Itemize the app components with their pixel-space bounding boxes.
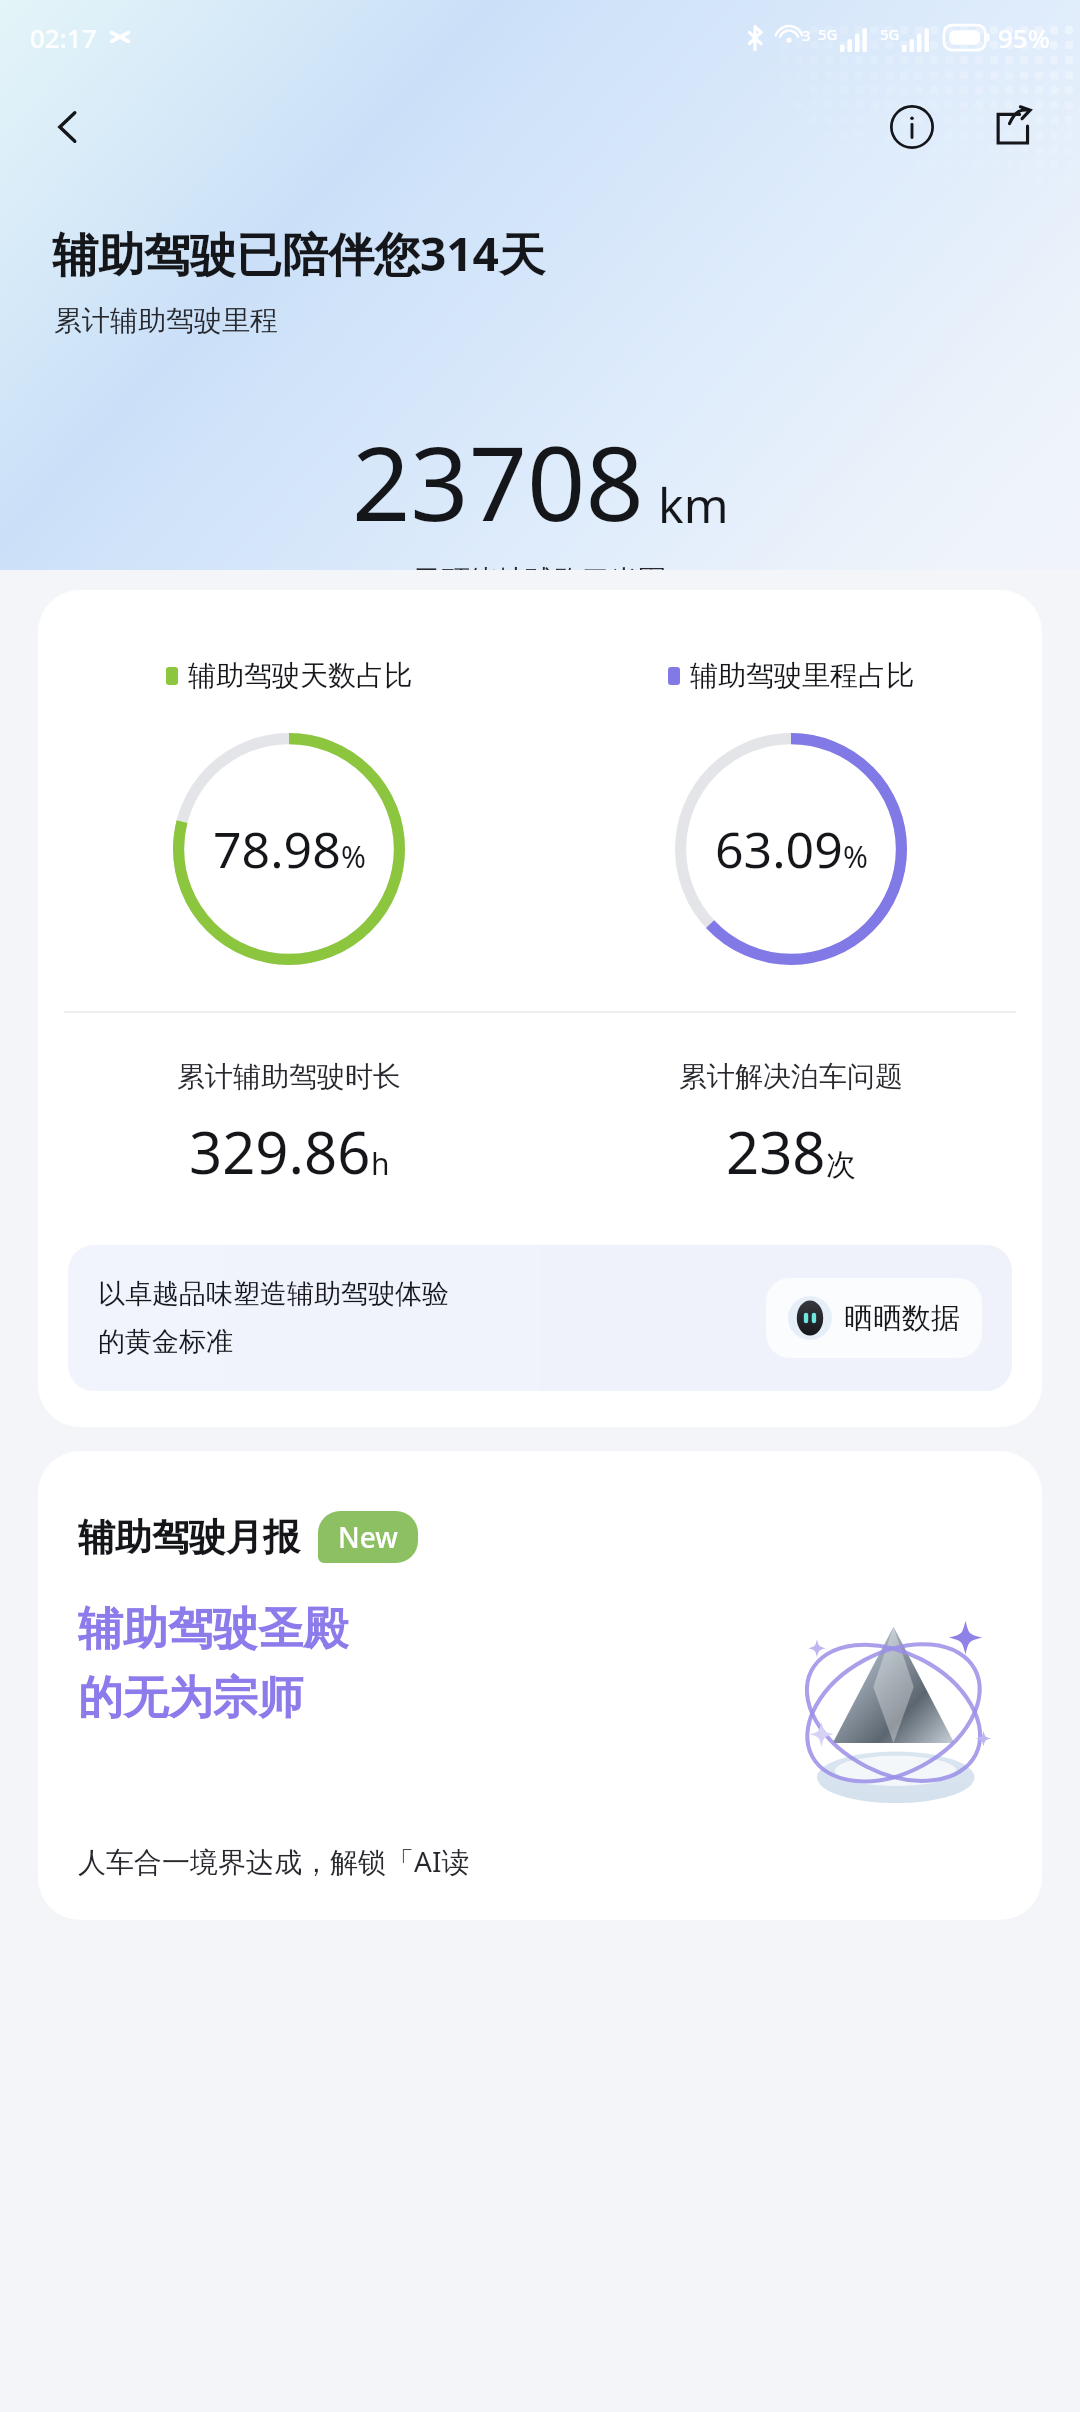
button[interactable]: Back [26, 85, 110, 169]
staticText: 人车合一境界达成，解锁「AI读 [78, 1842, 470, 1880]
staticText: h [371, 1143, 390, 1184]
staticText: 辅助驾驶已陪伴您314天 [52, 222, 545, 285]
staticText: 以卓越品味塑造辅助驾驶体验 [98, 1277, 449, 1311]
staticText: % [843, 836, 868, 877]
staticText: 3 [802, 25, 811, 45]
staticText: 累计辅助驾驶里程 [54, 303, 278, 338]
button[interactable]: Share [970, 85, 1054, 169]
staticText: 02:17 [30, 20, 97, 55]
staticText: 辅助驾驶月报 [78, 1514, 300, 1561]
staticText: 累计辅助驾驶时长 [177, 1059, 401, 1094]
staticText: 辅助驾驶天数占比 [188, 658, 412, 693]
button[interactable]: 晒晒数据 [766, 1278, 982, 1358]
staticText: 次 [826, 1146, 856, 1184]
button[interactable]: 辅助驾驶月报 [38, 1451, 1042, 1920]
staticText: 5G [818, 24, 838, 44]
staticText: 329.86 [189, 1112, 371, 1191]
staticText: 95% [998, 20, 1050, 55]
staticText: 的无为宗师 [78, 1670, 303, 1727]
staticText: 63.09 [715, 815, 843, 883]
button[interactable]: Info [870, 85, 954, 169]
staticText: 23708 [352, 412, 644, 551]
staticText: 238 [726, 1112, 826, 1191]
staticText: 的黄金标准 [98, 1325, 233, 1359]
staticText: 已环绕地球跑了半圈 [0, 563, 1080, 570]
staticText: 晒晒数据 [844, 1300, 960, 1337]
staticText: % [341, 836, 366, 877]
staticText: 辅助驾驶圣殿 [78, 1601, 348, 1658]
staticText: 累计解决泊车问题 [679, 1059, 903, 1094]
staticText: 辅助驾驶里程占比 [690, 658, 914, 693]
staticText: 78.98 [213, 815, 341, 883]
staticText: km [658, 472, 729, 537]
staticText: New [338, 1518, 398, 1556]
staticText: 5G [880, 24, 900, 44]
